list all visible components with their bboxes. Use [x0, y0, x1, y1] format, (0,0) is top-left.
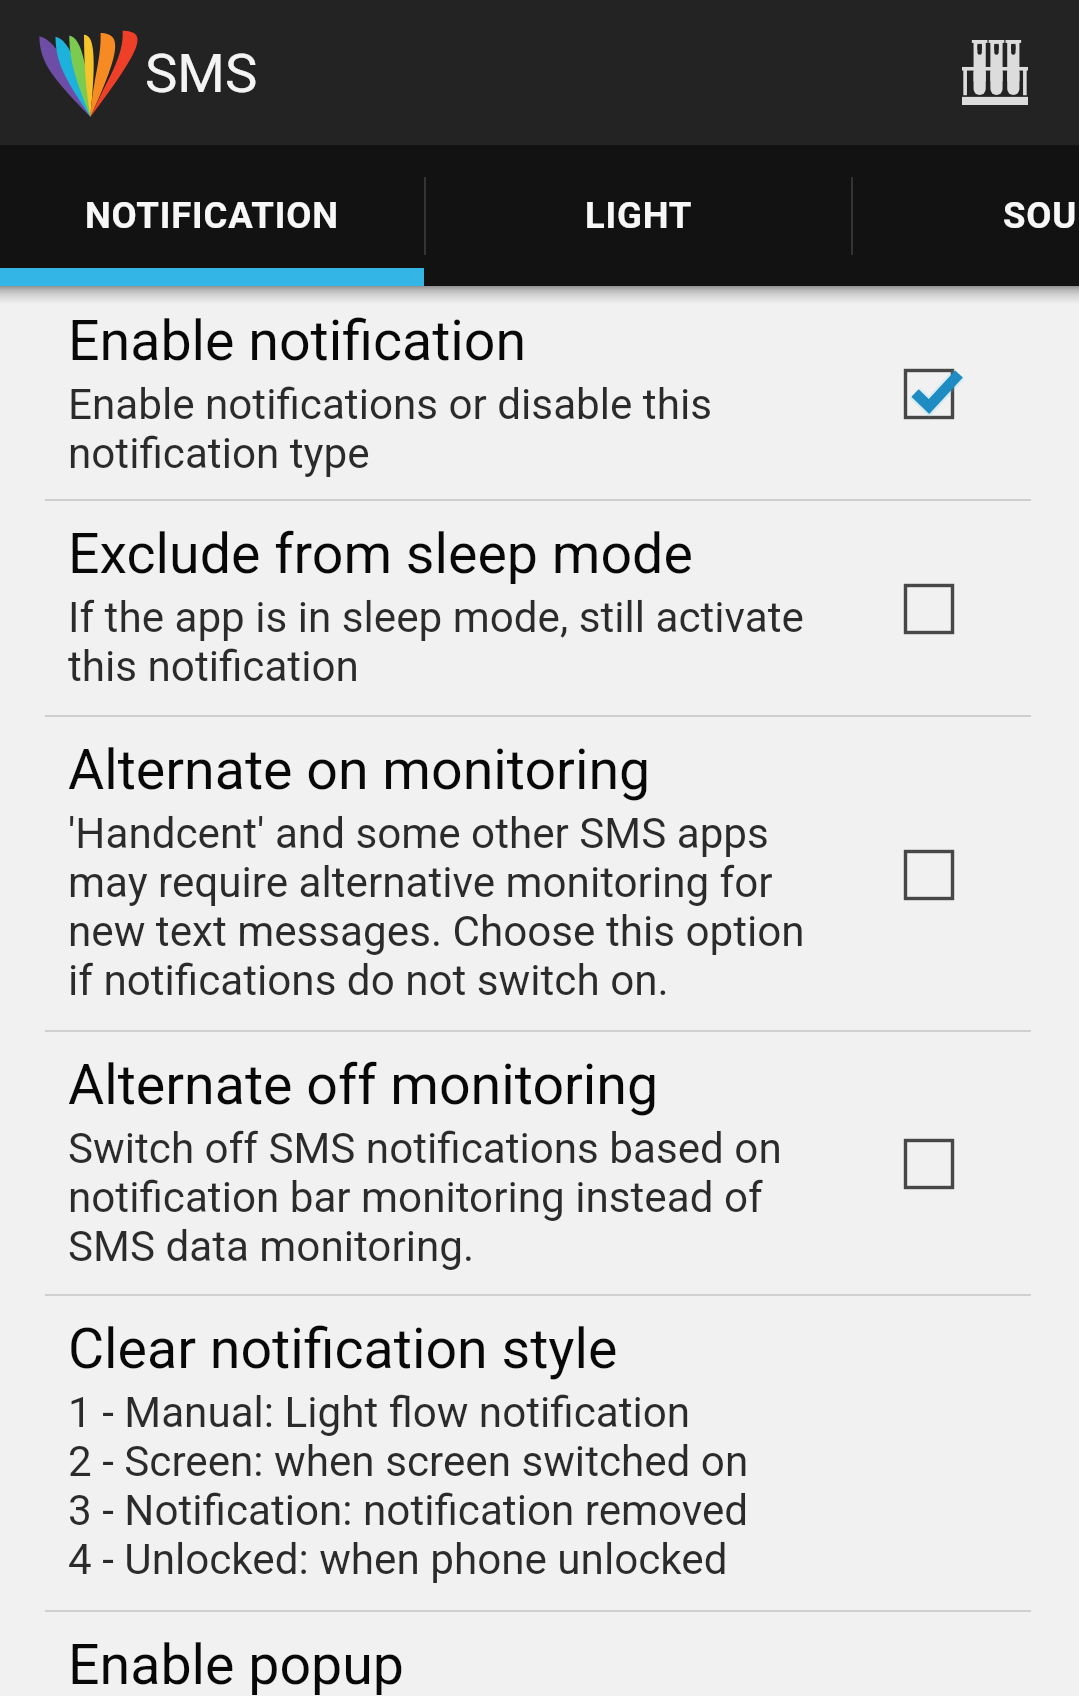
staticText: Exclude from sleep mode — [68, 522, 693, 587]
button[interactable]: Checkbox checked — [874, 339, 984, 449]
button[interactable]: Checkbox unchecked — [874, 1109, 984, 1219]
staticText: SOUND — [1003, 194, 1079, 237]
button[interactable]: Test notification — [922, 0, 1067, 145]
staticText: 'Handcent' and some other SMS apps may r… — [68, 809, 832, 1005]
staticText: Switch off SMS notifications based on no… — [68, 1124, 832, 1271]
button[interactable]: Alternate off monitoring — [0, 1032, 1079, 1296]
staticText: LIGHT — [585, 194, 693, 237]
button[interactable]: Enable notification — [0, 286, 1079, 501]
button[interactable]: Checkbox unchecked — [874, 820, 984, 930]
button[interactable]: Enable popup — [0, 1612, 1079, 1696]
button[interactable]: Exclude from sleep mode — [0, 501, 1079, 717]
staticText: Enable notifications or disable this not… — [68, 380, 832, 478]
button[interactable]: LIGHT — [426, 145, 851, 286]
button[interactable]: SOUND — [853, 145, 1079, 286]
button[interactable]: Alternate on monitoring — [0, 717, 1079, 1032]
button[interactable]: Checkbox unchecked — [874, 554, 984, 664]
staticText: Enable notification — [68, 309, 527, 374]
staticText: If the app is in sleep mode, still activ… — [68, 593, 832, 691]
staticText: Alternate on monitoring — [68, 738, 651, 803]
button[interactable]: Clear notification style — [0, 1296, 1079, 1612]
staticText: Clear notification style — [68, 1317, 618, 1382]
staticText: Enable popup — [68, 1633, 404, 1696]
staticText: NOTIFICATION — [85, 194, 339, 237]
staticText: Alternate off monitoring — [68, 1053, 659, 1118]
staticText: SMS — [145, 41, 258, 105]
staticText: 1 - Manual: Light flow notification 2 - … — [68, 1388, 749, 1584]
button[interactable]: NOTIFICATION — [0, 145, 424, 286]
